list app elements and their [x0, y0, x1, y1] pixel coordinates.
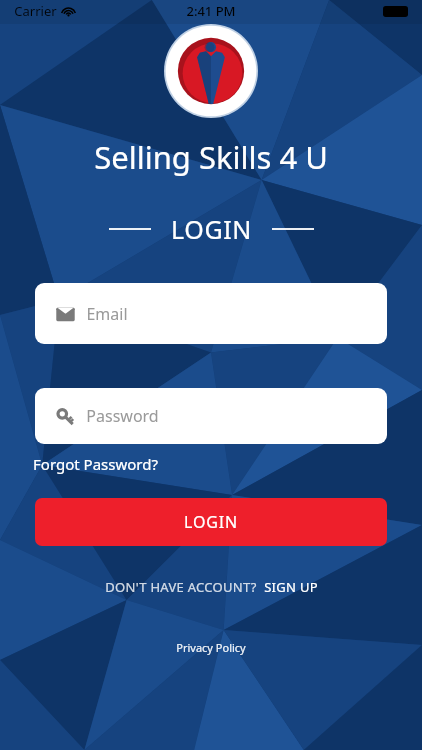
staticText: Forgot Password? [33, 454, 158, 474]
staticText: Email [86, 303, 128, 325]
staticText: Selling Skills 4 U [94, 136, 328, 178]
staticText: LOGIN [171, 212, 252, 246]
staticText: SIGN UP [264, 578, 318, 596]
staticText: LOGIN [184, 511, 238, 533]
staticText: Password [86, 405, 159, 427]
staticText: Carrier [14, 2, 57, 20]
button[interactable]: LOGIN [35, 498, 387, 546]
button[interactable]: Password [35, 388, 387, 444]
staticText: 2:41 PM [186, 2, 236, 20]
staticText: Privacy Policy [176, 640, 246, 655]
button[interactable]: Email [35, 283, 387, 344]
button[interactable]: Forgot Password? [33, 452, 158, 476]
button[interactable]: Privacy Policy [166, 636, 256, 659]
staticText: DON'T HAVE ACCOUNT? [105, 578, 257, 596]
button[interactable]: DON'T HAVE ACCOUNT? [93, 574, 330, 600]
